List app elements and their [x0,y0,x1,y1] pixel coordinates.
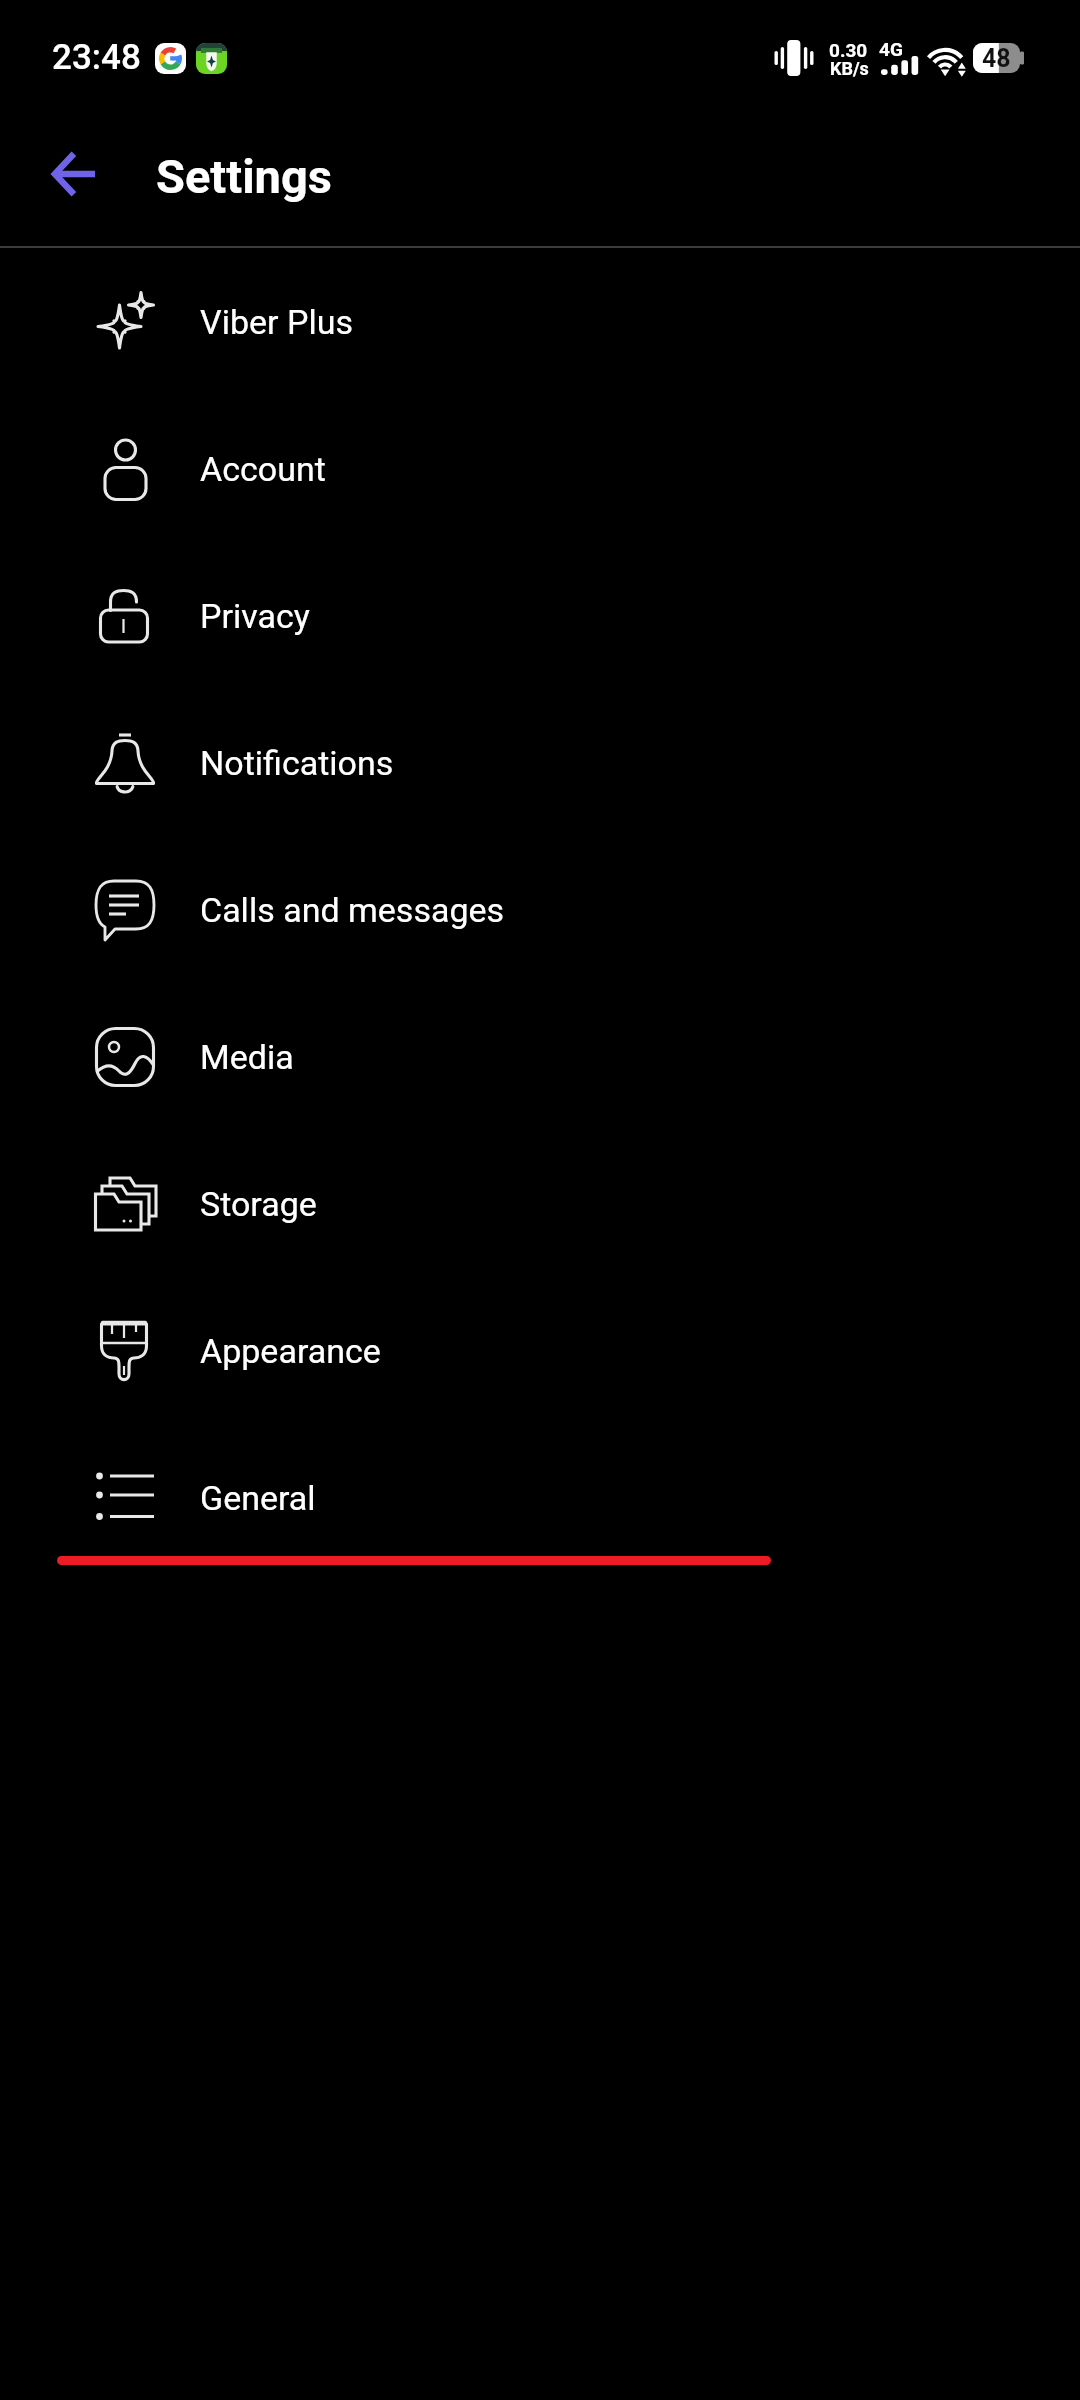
button[interactable]: General [0,1424,1080,1571]
button[interactable]: Viber Plus [0,248,1080,395]
staticText: Account [200,449,326,489]
button[interactable]: Notifications [0,689,1080,836]
staticText: 23:48 [52,37,141,78]
staticText: General [200,1478,316,1518]
staticText: Notifications [200,743,394,783]
button[interactable]: Privacy [0,542,1080,689]
button[interactable]: Storage [0,1130,1080,1277]
staticText: Storage [200,1184,317,1224]
staticText: 0.30 [829,39,868,61]
staticText: Privacy [200,596,310,636]
staticText: Settings [156,149,332,204]
staticText: 4G [879,38,903,60]
button[interactable]: Appearance [0,1277,1080,1424]
staticText: Media [200,1037,294,1077]
staticText: Appearance [200,1331,381,1371]
button[interactable]: Calls and messages [0,836,1080,983]
button[interactable]: Media [0,983,1080,1130]
button[interactable]: Back [28,129,118,219]
button[interactable]: Account [0,395,1080,542]
staticText: KB/s [830,58,869,79]
staticText: 48 [982,44,1011,73]
staticText: Viber Plus [200,302,353,342]
staticText: Calls and messages [200,890,505,930]
